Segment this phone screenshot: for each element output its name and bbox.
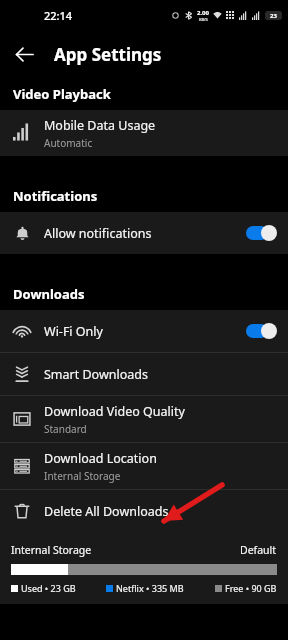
button[interactable]: Back — [0, 30, 48, 78]
staticText: Download Location — [44, 450, 157, 467]
staticText: Internal Storage — [11, 543, 92, 557]
staticText: 2.00 — [197, 9, 209, 17]
staticText: Download Video Quality — [44, 403, 185, 420]
staticText: Netflix • 335 MB — [116, 582, 184, 594]
button[interactable]: Toggle — [246, 323, 277, 339]
staticText: Mobile Data Usage — [44, 117, 156, 134]
staticText: Smart Downloads — [44, 366, 148, 383]
staticText: Delete All Downloads — [44, 503, 169, 520]
staticText: Internal Storage — [44, 469, 121, 483]
staticText: App Settings — [54, 43, 162, 66]
staticText: Video Playback — [13, 85, 111, 103]
button[interactable]: Allow notifications — [0, 212, 288, 254]
staticText: 23 — [270, 12, 277, 20]
button[interactable]: Download Video Quality — [0, 396, 288, 442]
staticText: Standard — [44, 422, 87, 436]
button[interactable]: Wi-Fi Only — [0, 310, 288, 352]
staticText: Free • 90 GB — [225, 582, 277, 594]
staticText: Used • 23 GB — [21, 582, 76, 594]
staticText: Notifications — [13, 187, 98, 205]
staticText: Wi-Fi Only — [44, 323, 103, 340]
staticText: Downloads — [13, 285, 85, 303]
button[interactable]: Toggle — [246, 225, 277, 241]
button[interactable]: Delete All Downloads — [0, 490, 288, 532]
staticText: KB/S — [199, 17, 208, 22]
staticText: Default — [240, 543, 277, 557]
button[interactable]: Mobile Data Usage — [0, 110, 288, 156]
staticText: Allow notifications — [44, 225, 152, 242]
button[interactable]: Download Location — [0, 443, 288, 489]
button[interactable]: Smart Downloads — [0, 353, 288, 395]
staticText: Automatic — [44, 136, 93, 150]
staticText: 22:14 — [44, 8, 73, 23]
